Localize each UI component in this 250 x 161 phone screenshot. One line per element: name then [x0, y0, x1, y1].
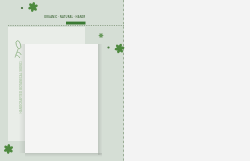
staticText: HANDCRAFTED BOTANICAL SKINCARE [18, 61, 22, 113]
button[interactable]: ORGANIC · NATURAL · HANDMADE [44, 14, 85, 19]
button[interactable]: Brand tagline [17, 61, 22, 113]
staticText: ORGANIC · NATURAL · HANDMADE [44, 15, 85, 19]
